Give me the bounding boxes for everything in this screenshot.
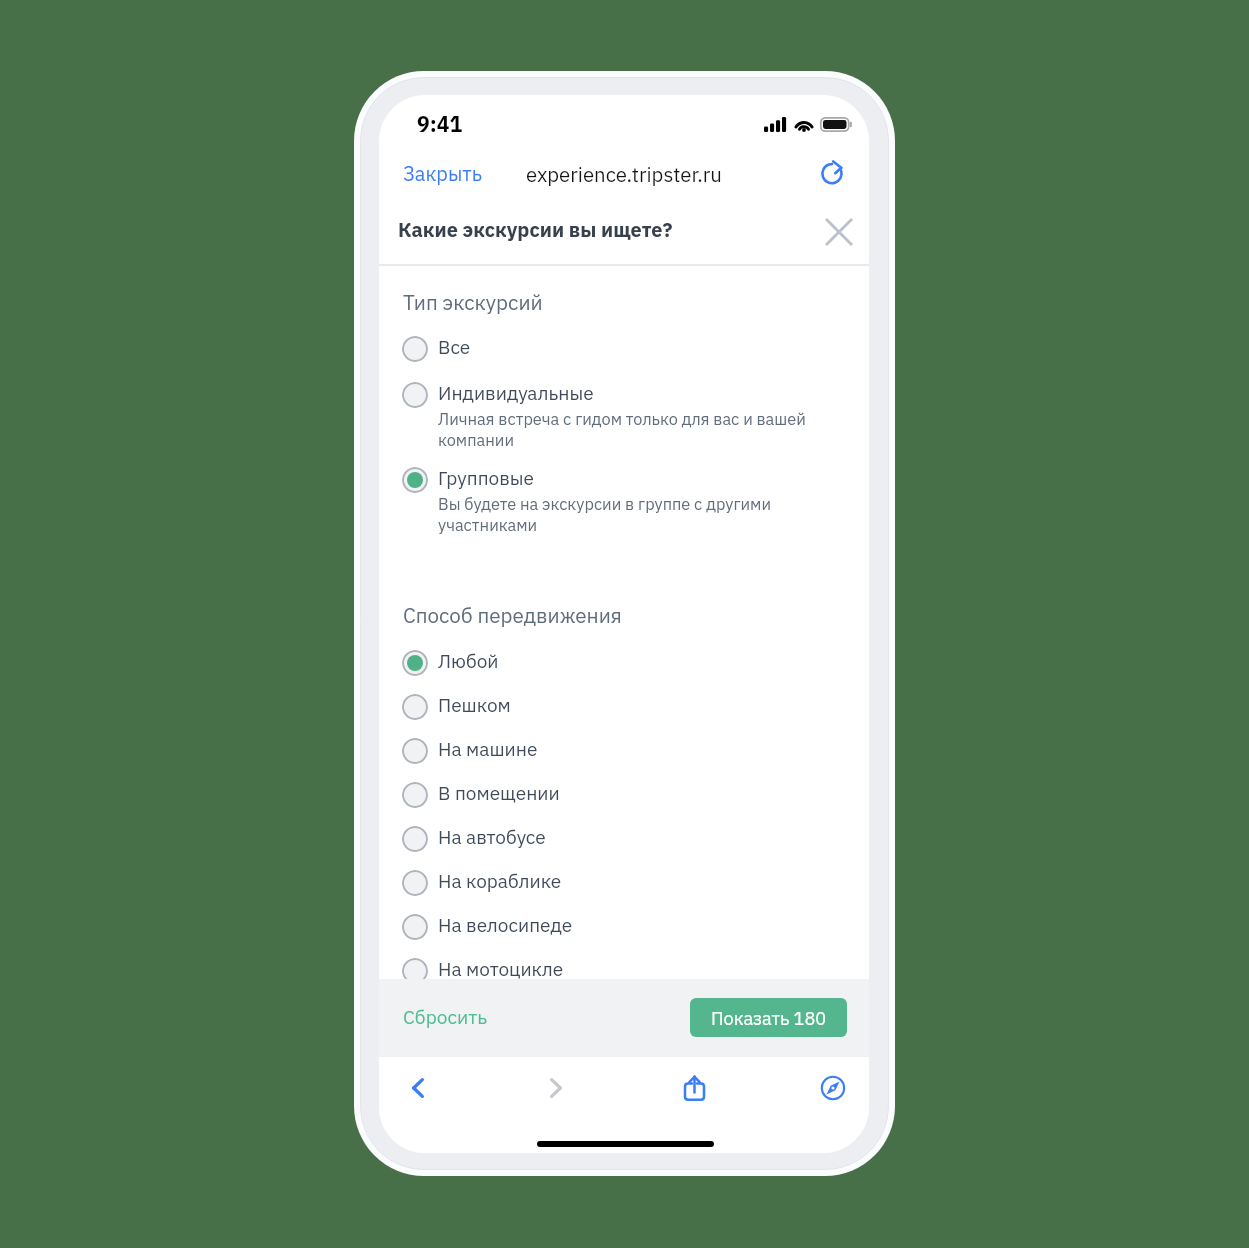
- staticText: Групповые: [438, 466, 534, 491]
- staticText: Все: [438, 335, 471, 360]
- button[interactable]: Share: [667, 1061, 721, 1115]
- staticText: Какие экскурсии вы ищете?: [398, 217, 673, 243]
- button[interactable]: Bookmarks: [806, 1061, 860, 1115]
- button[interactable]: На машине: [379, 730, 849, 770]
- button[interactable]: Индивидуальные: [379, 374, 849, 455]
- button[interactable]: Close filters: [819, 212, 859, 252]
- staticText: Показать 180: [711, 1006, 827, 1030]
- button[interactable]: Все: [379, 328, 849, 368]
- staticText: Тип экскурсий: [403, 289, 543, 316]
- button[interactable]: Любой: [379, 642, 849, 682]
- staticText: На мотоцикле: [438, 957, 564, 982]
- staticText: На автобусе: [438, 825, 546, 850]
- button[interactable]: Back: [391, 1061, 445, 1115]
- button[interactable]: На кораблике: [379, 862, 849, 902]
- button[interactable]: Пешком: [379, 686, 849, 726]
- button[interactable]: Закрыть: [392, 152, 494, 196]
- staticText: experience.tripster.ru: [526, 161, 722, 188]
- staticText: Любой: [438, 649, 499, 674]
- staticText: Сбросить: [403, 1004, 488, 1029]
- button[interactable]: В помещении: [379, 774, 849, 814]
- button[interactable]: Групповые: [379, 459, 849, 540]
- staticText: Способ передвижения: [403, 602, 622, 629]
- staticText: В помещении: [438, 781, 560, 806]
- button[interactable]: Показать 180: [690, 998, 847, 1037]
- staticText: Индивидуальные: [438, 381, 594, 406]
- staticText: Личная встреча с гидом только для вас и …: [438, 408, 806, 450]
- button[interactable]: На мотоцикле: [379, 950, 849, 990]
- staticText: На велосипеде: [438, 913, 573, 938]
- staticText: Вы будете на экскурсии в группе с другим…: [438, 493, 771, 535]
- staticText: На кораблике: [438, 869, 562, 894]
- staticText: На машине: [438, 737, 538, 762]
- button[interactable]: На велосипеде: [379, 906, 849, 946]
- button[interactable]: Forward: [529, 1061, 583, 1115]
- staticText: 9:41: [417, 110, 463, 138]
- button[interactable]: Reload page: [813, 153, 851, 191]
- button[interactable]: Сбросить: [392, 995, 499, 1038]
- button[interactable]: На автобусе: [379, 818, 849, 858]
- staticText: Пешком: [438, 693, 511, 718]
- staticText: Закрыть: [403, 161, 483, 187]
